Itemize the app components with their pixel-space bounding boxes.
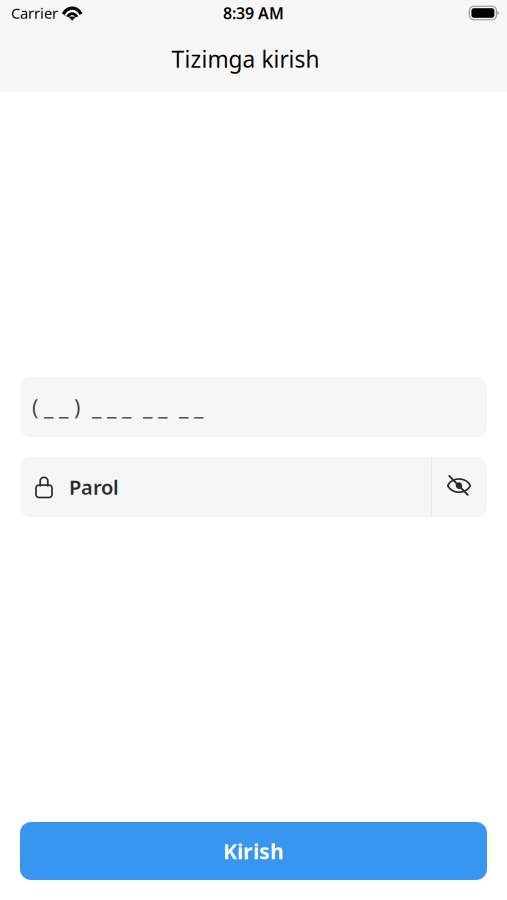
staticText: Carrier xyxy=(11,3,58,23)
staticText: Kirish xyxy=(223,837,284,865)
staticText: 8:39 AM xyxy=(223,2,284,24)
staticText: Tizimga kirish xyxy=(171,44,319,74)
staticText: ( _ _ ) _ _ _ _ _ _ _ xyxy=(32,393,203,421)
button[interactable]: Show password xyxy=(431,457,487,517)
staticText: Parol xyxy=(69,474,119,500)
button[interactable]: Kirish xyxy=(20,822,487,880)
